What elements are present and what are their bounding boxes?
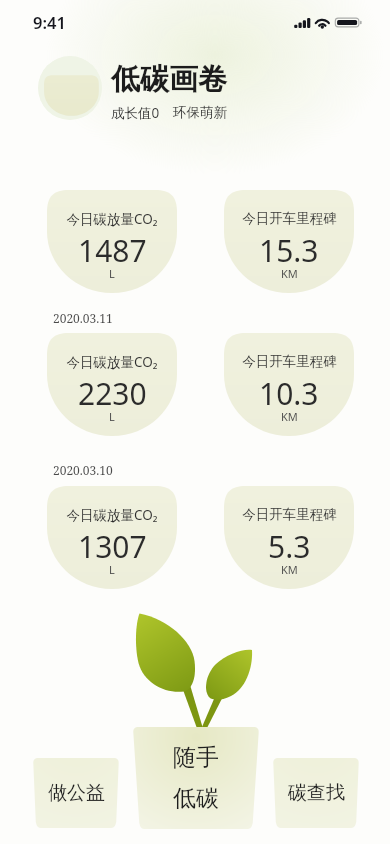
staticText: 低碳画卷 [111,61,227,98]
staticText: 今日碳放量CO₂ [66,353,158,371]
button[interactable]: 做公益 [33,758,119,828]
staticText: 做公益 [48,781,105,805]
staticText: 环保萌新 [173,104,227,121]
staticText: 今日碳放量CO₂ [66,210,158,228]
staticText: 今日开车里程碑 [242,353,337,370]
button[interactable]: 今日开车里程碑 [224,333,354,436]
staticText: 1487 [78,230,147,271]
button[interactable]: 今日开车里程碑 [224,486,354,589]
staticText: 成长值0 [111,104,160,122]
staticText: 5.3 [268,526,311,567]
staticText: 1307 [78,526,147,567]
button[interactable]: 随手 [133,727,259,829]
staticText: 随手 [173,743,219,772]
staticText: KM [281,409,298,424]
staticText: 低碳 [173,784,219,813]
button[interactable]: 今日碳放量CO₂ [47,486,177,589]
button[interactable]: 今日开车里程碑 [224,190,354,293]
staticText: KM [281,562,298,577]
staticText: 2020.03.11 [53,310,113,326]
staticText: L [109,562,115,577]
button[interactable]: 今日碳放量CO₂ [47,333,177,436]
staticText: 今日开车里程碑 [242,506,337,523]
button[interactable]: 今日碳放量CO₂ [47,190,177,293]
staticText: 10.3 [259,373,319,414]
staticText: 碳查找 [288,781,345,805]
staticText: L [109,409,115,424]
staticText: 15.3 [259,230,319,271]
staticText: 2230 [78,373,147,414]
staticText: KM [281,266,298,281]
button[interactable]: 碳查找 [273,758,359,828]
staticText: L [109,266,115,281]
staticText: 9:41 [33,11,66,33]
button[interactable]: Profile avatar [38,56,102,120]
staticText: 今日开车里程碑 [242,210,337,227]
staticText: 今日碳放量CO₂ [66,506,158,524]
staticText: 2020.03.10 [53,462,113,478]
